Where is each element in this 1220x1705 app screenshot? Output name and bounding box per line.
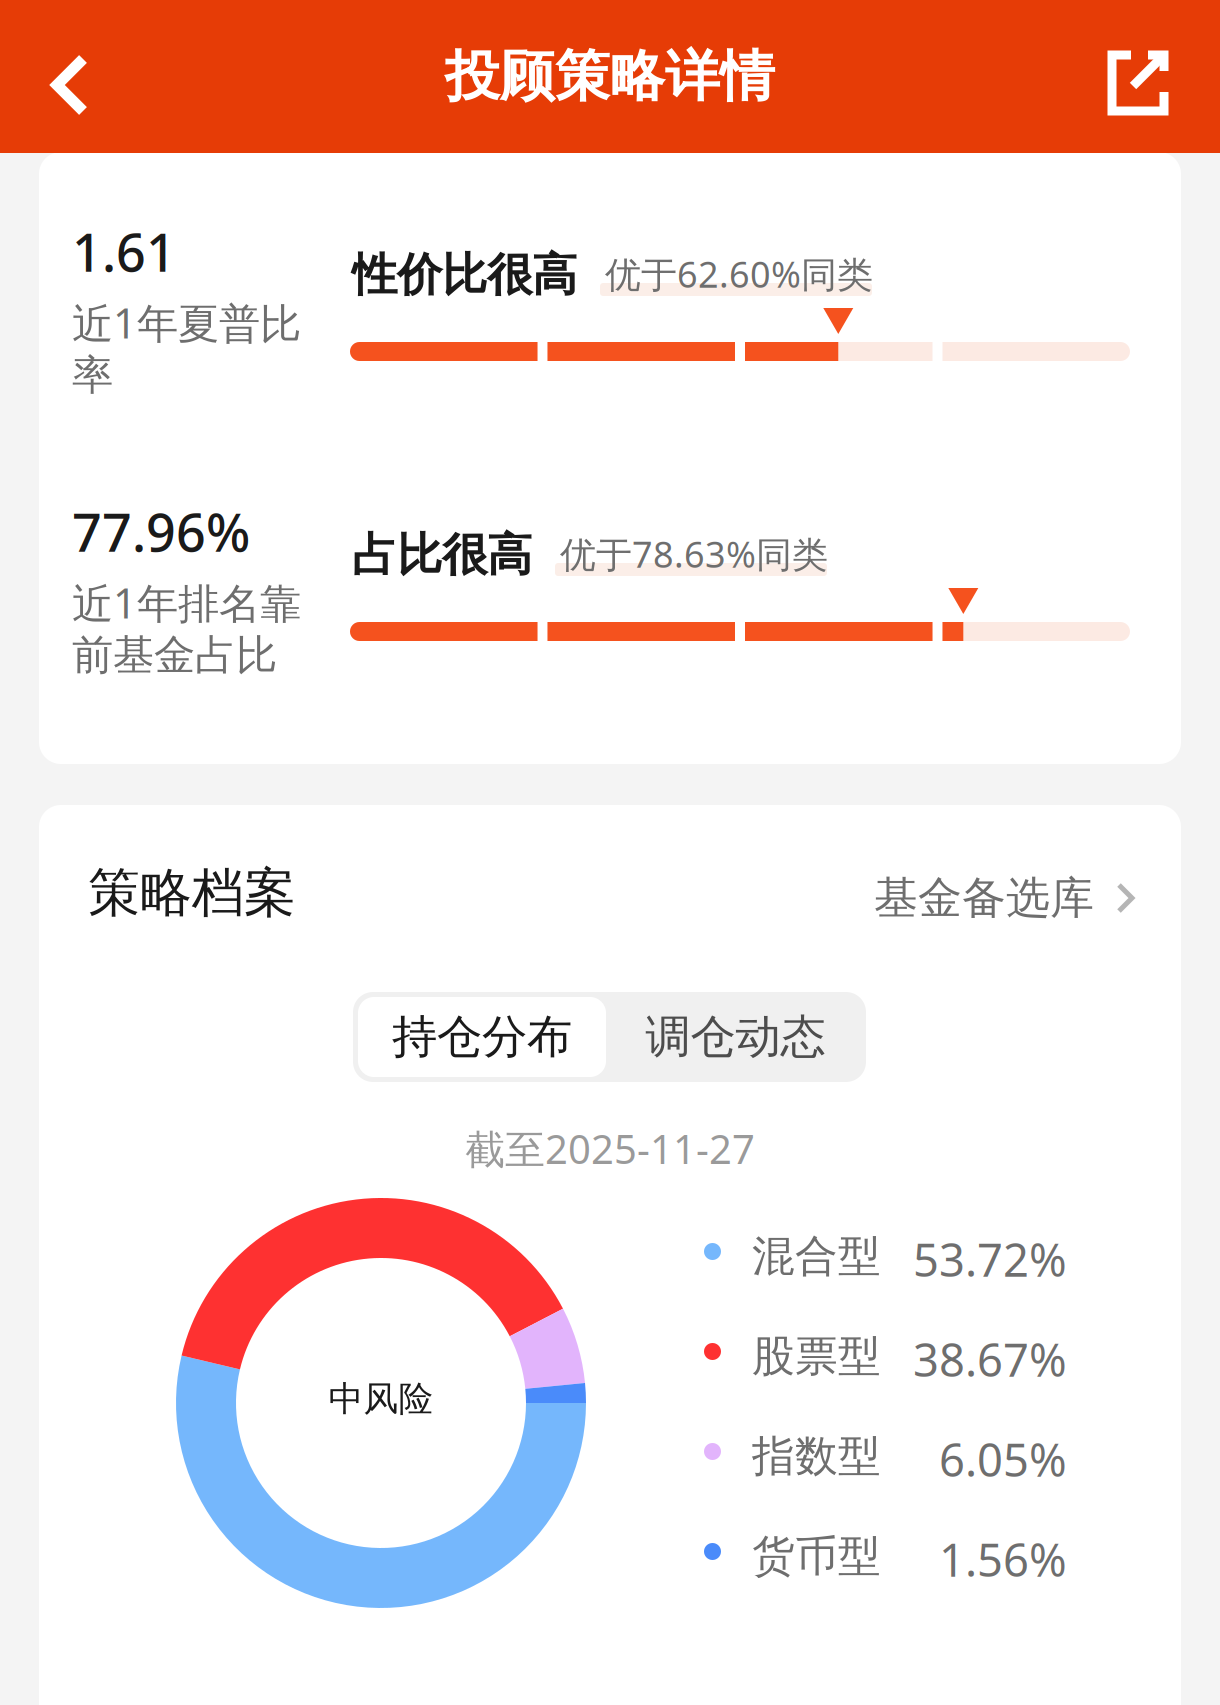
button[interactable]: Share [1085, 28, 1191, 138]
staticText: 截至2025-11-27 [465, 1122, 755, 1175]
staticText: 调仓动态 [645, 1009, 825, 1065]
staticText: 优于62.60%同类 [605, 250, 873, 298]
staticText: 投顾策略详情 [445, 43, 775, 110]
staticText: 近1年排名靠前基金占比 [72, 575, 301, 681]
staticText: 1.56% [939, 1529, 1067, 1589]
button[interactable]: 基金备选库 [874, 855, 1136, 941]
button[interactable]: 持仓分布 [358, 997, 606, 1077]
staticText: 近1年夏普比率 [72, 295, 301, 401]
staticText: 占比很高 [352, 527, 532, 583]
staticText: 股票型 [752, 1330, 881, 1382]
staticText: 混合型 [752, 1230, 881, 1282]
staticText: 优于78.63%同类 [560, 530, 828, 578]
button[interactable]: 调仓动态 [608, 992, 863, 1082]
staticText: 策略档案 [88, 861, 296, 925]
staticText: 基金备选库 [874, 871, 1094, 925]
staticText: 性价比很高 [352, 247, 577, 303]
staticText: 持仓分布 [392, 1009, 572, 1065]
staticText: 6.05% [939, 1429, 1067, 1489]
staticText: 1.61 [72, 217, 176, 286]
staticText: 77.96% [72, 497, 250, 566]
staticText: 53.72% [913, 1229, 1067, 1289]
staticText: 指数型 [752, 1430, 881, 1482]
staticText: 中风险 [328, 1378, 433, 1420]
staticText: 38.67% [913, 1329, 1067, 1389]
staticText: 货币型 [752, 1530, 881, 1582]
button[interactable]: Back [27, 30, 115, 140]
